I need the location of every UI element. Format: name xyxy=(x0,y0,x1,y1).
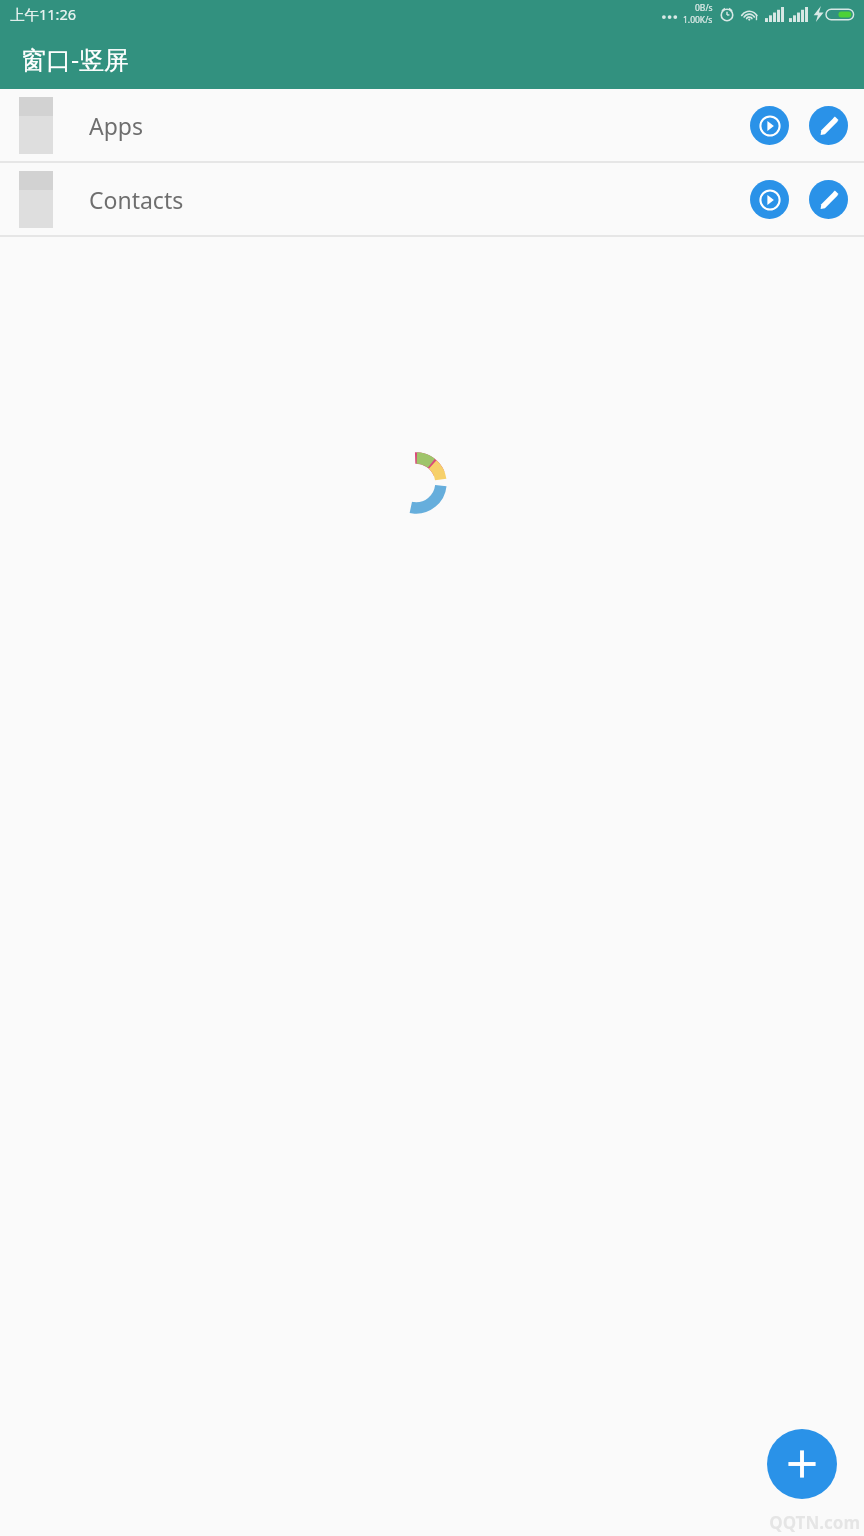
button[interactable]: Run xyxy=(750,180,789,219)
button[interactable]: Contacts xyxy=(0,163,864,235)
staticText: Contacts xyxy=(89,184,184,215)
staticText: 窗口-竖屏 xyxy=(21,42,130,76)
button[interactable]: Run xyxy=(750,106,789,145)
staticText: 1.00K/s xyxy=(683,14,713,26)
staticText: QQTN.com xyxy=(769,1511,860,1534)
button[interactable]: Edit xyxy=(809,106,848,145)
staticText: 0B/s xyxy=(695,2,713,14)
button[interactable]: Add xyxy=(767,1429,837,1499)
staticText: 上午11:26 xyxy=(10,4,77,24)
button[interactable]: Apps xyxy=(0,89,864,161)
staticText: Apps xyxy=(89,110,144,141)
button[interactable]: Edit xyxy=(809,180,848,219)
